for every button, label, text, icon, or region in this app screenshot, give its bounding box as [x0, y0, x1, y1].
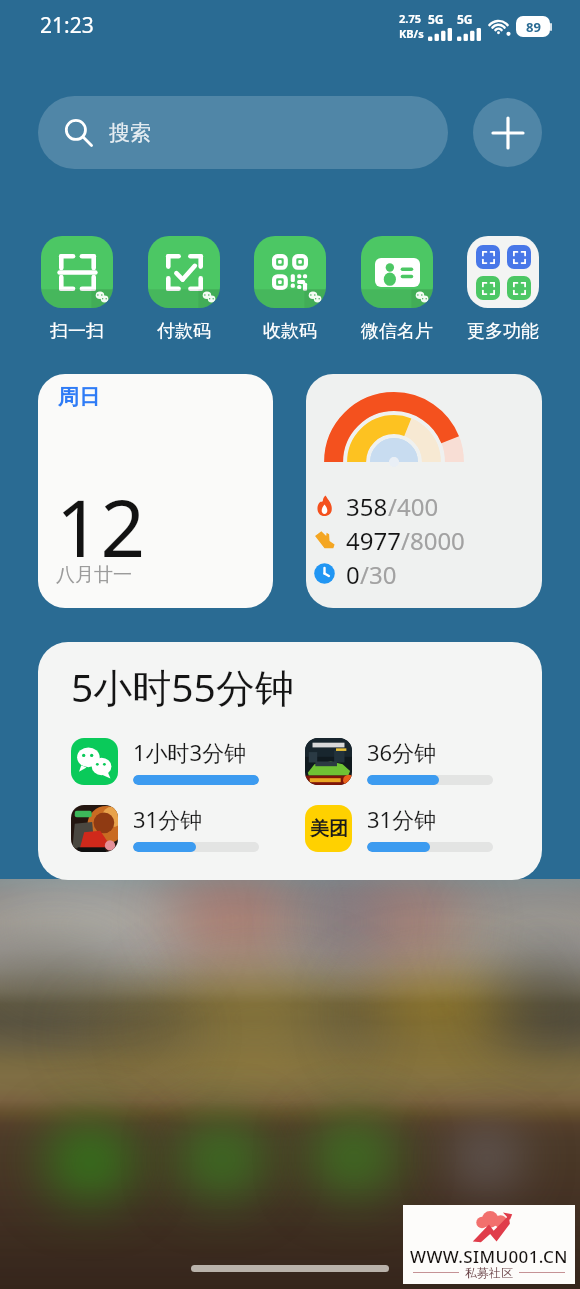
staticText: 搜索: [109, 120, 151, 146]
staticText: 31分钟: [133, 804, 203, 834]
staticText: 5小时55分钟: [71, 660, 294, 713]
button[interactable]: 美团: [305, 804, 539, 852]
staticText: /30: [360, 558, 397, 588]
button[interactable]: 5小时55分钟: [38, 642, 542, 880]
staticText: 21:23: [40, 11, 94, 40]
staticText: 收款码: [263, 320, 317, 343]
staticText: 89: [526, 18, 541, 36]
staticText: 八月廿一: [56, 563, 132, 587]
staticText: 2.75: [399, 11, 421, 26]
staticText: 私募社区: [465, 1265, 513, 1280]
staticText: 付款码: [157, 320, 211, 343]
button[interactable]: 周日: [38, 374, 273, 608]
staticText: /400: [388, 490, 439, 520]
staticText: 微信名片: [361, 320, 433, 343]
staticText: 1小时3分钟: [133, 737, 247, 767]
staticText: /8000: [401, 524, 465, 554]
staticText: 0: [346, 558, 360, 588]
staticText: 周日: [58, 384, 100, 410]
button[interactable]: 微信名片: [361, 236, 433, 343]
button[interactable]: 36分钟: [305, 737, 539, 785]
staticText: 扫一扫: [50, 320, 104, 343]
button[interactable]: 搜索: [38, 96, 448, 169]
staticText: 36分钟: [367, 737, 437, 767]
button[interactable]: 31分钟: [71, 804, 305, 852]
button[interactable]: 更多功能: [467, 236, 539, 343]
staticText: 5G: [457, 11, 473, 27]
staticText: 358: [346, 490, 388, 520]
button[interactable]: 收款码: [254, 236, 326, 343]
button[interactable]: Add widget: [473, 98, 542, 167]
staticText: 5G: [428, 11, 444, 27]
button[interactable]: 扫一扫: [41, 236, 113, 343]
staticText: 12: [56, 474, 146, 580]
staticText: WWW.SIMU001.CN: [410, 1245, 568, 1268]
staticText: KB/s: [399, 26, 424, 41]
button[interactable]: 1小时3分钟: [71, 737, 305, 785]
staticText: 更多功能: [467, 320, 539, 343]
staticText: 4977: [346, 524, 401, 554]
staticText: 31分钟: [367, 804, 437, 834]
button[interactable]: 358: [306, 374, 542, 608]
staticText: 美团: [310, 817, 348, 841]
button[interactable]: 付款码: [148, 236, 220, 343]
